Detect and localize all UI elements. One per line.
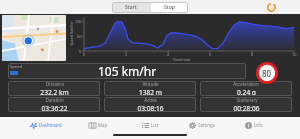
staticText: 105 km/hr — [98, 63, 157, 79]
button[interactable]: Start — [112, 2, 150, 13]
staticText: Map — [98, 122, 108, 128]
staticText: 0 — [83, 52, 86, 57]
staticText: 80 — [262, 68, 272, 79]
button[interactable]: Distance — [8, 81, 100, 96]
staticText: Distance — [46, 81, 64, 87]
button[interactable]: Stop — [151, 3, 187, 12]
staticText: Dashboard — [39, 122, 62, 128]
button[interactable]: Duration — [8, 97, 100, 112]
staticText: 1382 m — [139, 88, 162, 96]
button[interactable]: List — [124, 117, 176, 133]
staticText: Start — [125, 4, 137, 11]
button[interactable]: Active — [104, 97, 196, 112]
staticText: Duration — [45, 97, 64, 103]
staticText: Info — [254, 122, 263, 128]
staticText: 10 — [292, 52, 297, 57]
staticText: 6 — [209, 52, 212, 57]
staticText: 0 — [79, 49, 82, 54]
button[interactable]: Settings — [176, 117, 228, 133]
button[interactable]: Stationary — [200, 97, 292, 112]
button[interactable]: Dashboard — [20, 117, 72, 133]
staticText: 03:36:22 — [41, 104, 68, 112]
staticText: Active — [144, 97, 157, 103]
staticText: 8 — [251, 52, 254, 57]
staticText: 4 — [167, 52, 170, 57]
staticText: Speed (km/hr) — [68, 21, 73, 45]
staticText: 50 — [77, 34, 82, 39]
button[interactable]: Map — [72, 117, 124, 133]
staticText: Stop — [164, 4, 175, 11]
staticText: 232.2 km — [40, 88, 69, 96]
button[interactable]: Speed — [8, 63, 246, 79]
staticText: List — [151, 122, 159, 128]
button[interactable] — [2, 15, 66, 61]
staticText: Speed — [10, 64, 23, 70]
staticText: 0.24 g — [237, 88, 256, 96]
button[interactable]: Altitude — [104, 81, 196, 96]
staticText: Time(min) — [173, 57, 190, 62]
staticText: 2 — [125, 52, 128, 57]
staticText: 100 — [75, 19, 82, 24]
staticText: 03:08:16 — [137, 104, 164, 112]
staticText: Acceleration — [233, 81, 259, 87]
button[interactable]: Speed limit 80 — [256, 62, 278, 84]
staticText: Stationary — [236, 97, 258, 103]
button[interactable]: Refresh — [266, 2, 277, 13]
staticText: Settings — [198, 122, 215, 128]
staticText: Altitude — [142, 81, 159, 87]
staticText: 00:28:06 — [233, 104, 260, 112]
button[interactable]: Acceleration — [200, 81, 292, 96]
button[interactable]: Info — [228, 117, 280, 133]
